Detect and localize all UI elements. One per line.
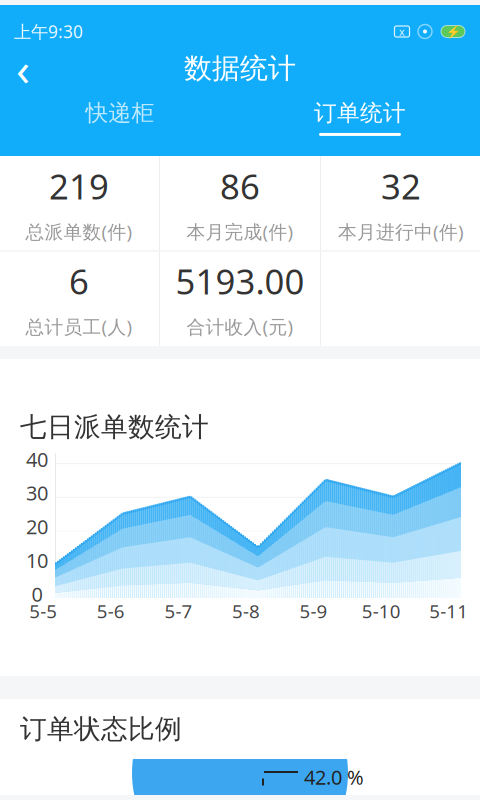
- staticText: 上午9:30: [14, 20, 83, 43]
- staticText: x: [399, 24, 405, 39]
- staticText: 总派单数(件): [25, 219, 132, 244]
- staticText: 32: [381, 163, 421, 209]
- staticText: 5-11: [429, 599, 468, 623]
- staticText: 219: [49, 163, 109, 209]
- staticText: 5-8: [232, 599, 260, 623]
- staticText: 总计员工(人): [25, 314, 132, 339]
- staticText: 5-10: [362, 599, 401, 623]
- button[interactable]: Back: [0, 45, 46, 91]
- staticText: 86: [220, 163, 260, 209]
- staticText: 6: [69, 258, 89, 304]
- staticText: ⚡: [445, 25, 460, 38]
- staticText: 5-6: [97, 599, 125, 623]
- staticText: 七日派单数统计: [20, 411, 209, 443]
- staticText: 合计收入(元): [186, 314, 293, 339]
- staticText: 20: [26, 513, 48, 540]
- staticText: 订单统计: [314, 99, 406, 127]
- staticText: 40: [26, 446, 48, 472]
- button[interactable]: 快递柜: [0, 92, 240, 142]
- staticText: ‹: [16, 38, 30, 99]
- staticText: 10: [26, 547, 48, 574]
- staticText: 5-5: [29, 599, 57, 623]
- staticText: 0: [31, 581, 42, 607]
- button[interactable]: 订单统计: [240, 92, 480, 142]
- staticText: 订单状态比例: [20, 713, 182, 745]
- staticText: 本月进行中(件): [338, 219, 464, 244]
- staticText: 42.0 %: [304, 764, 364, 790]
- staticText: 30: [26, 480, 48, 506]
- staticText: 本月完成(件): [186, 219, 293, 244]
- staticText: 5-7: [164, 599, 192, 623]
- staticText: 5193.00: [175, 258, 304, 304]
- staticText: 快递柜: [85, 99, 154, 127]
- staticText: 5-9: [300, 599, 328, 623]
- staticText: 数据统计: [184, 51, 296, 86]
